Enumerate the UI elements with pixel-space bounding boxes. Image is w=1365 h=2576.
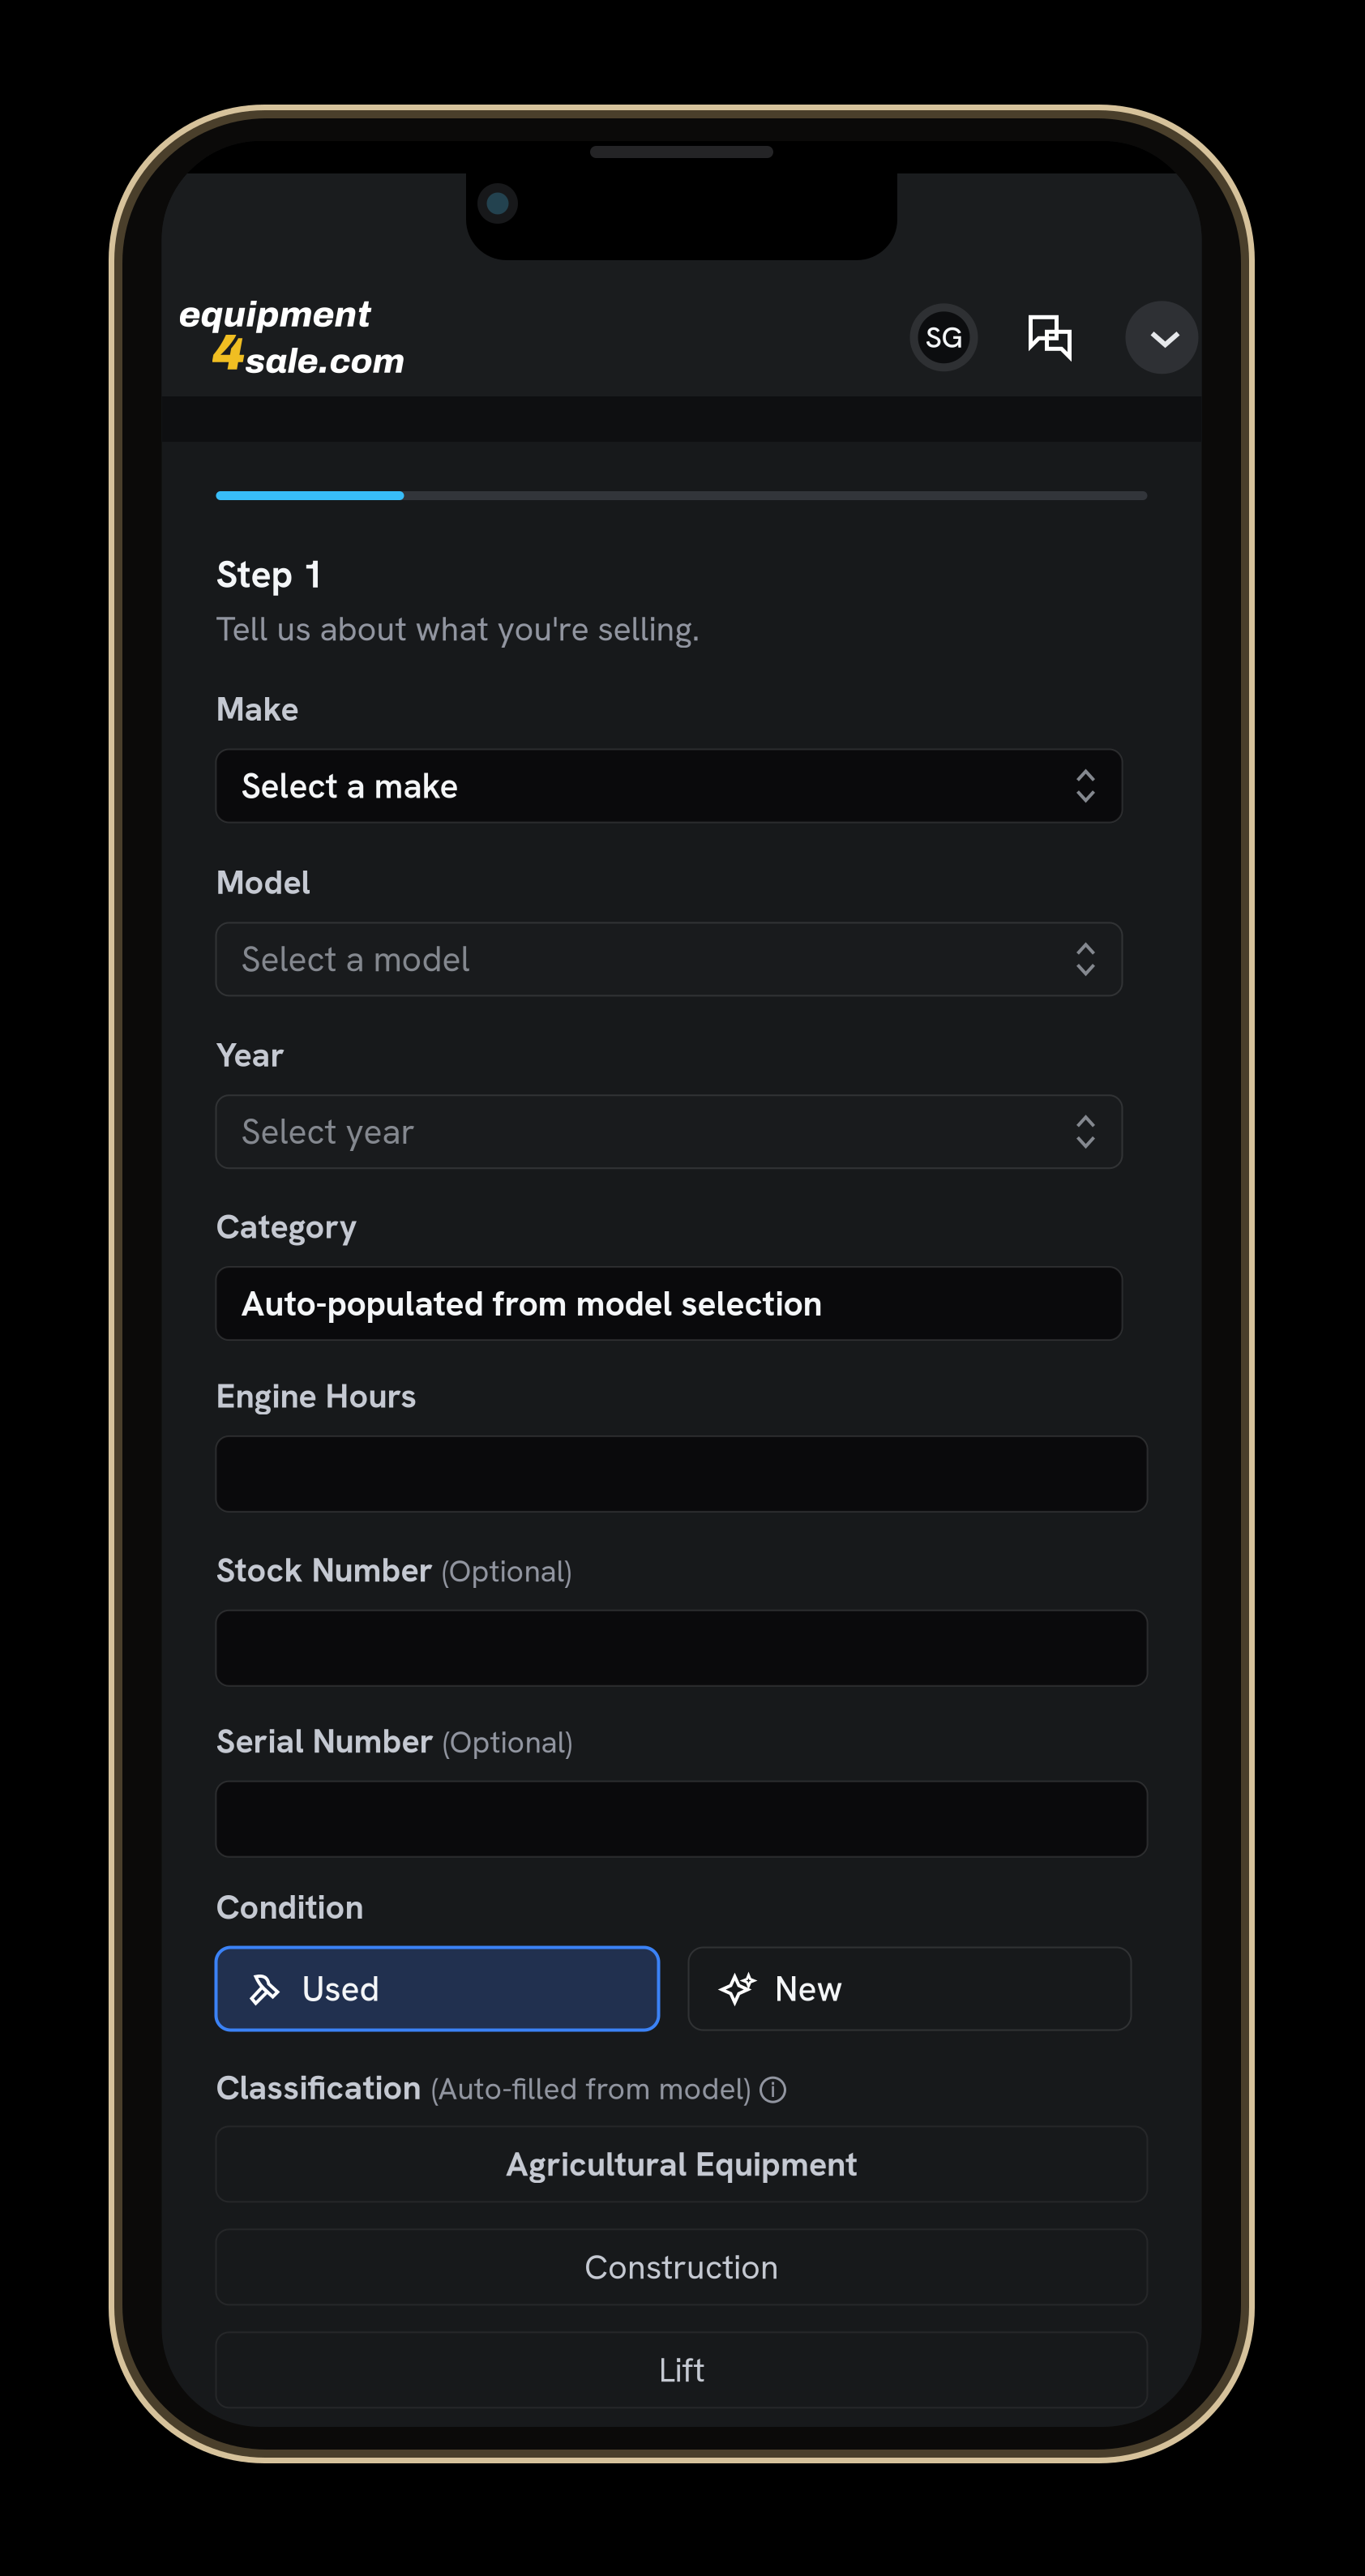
button[interactable]: Messages	[1019, 306, 1083, 369]
staticText: SG	[925, 318, 963, 356]
staticText: Stock Number	[216, 1548, 433, 1592]
button[interactable]: Open menu	[1125, 301, 1198, 374]
button[interactable]: Agricultural Equipment	[216, 2126, 1147, 2202]
staticText: Condition	[216, 1885, 364, 1929]
staticText: Year	[216, 1033, 285, 1077]
button[interactable]: Select year	[216, 1095, 1122, 1168]
staticText: Tell us about what you're selling.	[216, 607, 700, 651]
staticText: Select a make	[241, 763, 458, 808]
staticText: 4	[212, 326, 245, 380]
button[interactable]: Select a model	[216, 923, 1122, 996]
staticText: (Optional)	[443, 1722, 572, 1762]
button[interactable]: Select a make	[216, 749, 1122, 822]
staticText: Select year	[241, 1109, 415, 1154]
staticText: Serial Number	[216, 1719, 434, 1763]
staticText: Classification	[216, 2066, 421, 2109]
staticText: Model	[216, 860, 310, 904]
staticText: Make	[216, 687, 299, 731]
staticText: Category	[216, 1205, 357, 1248]
staticText: equipment	[179, 295, 371, 334]
button[interactable]: Construction	[216, 2229, 1147, 2305]
staticText: sale.com	[245, 342, 405, 380]
button[interactable]: Account	[910, 303, 978, 371]
staticText: Construction	[584, 2245, 779, 2289]
staticText: Used	[302, 1966, 380, 2011]
staticText: New	[774, 1966, 843, 2011]
staticText: i	[770, 2076, 775, 2104]
staticText: Lift	[659, 2348, 705, 2392]
button[interactable]: New	[689, 1947, 1131, 2030]
staticText: Step 1	[216, 550, 324, 599]
button[interactable]: Used	[216, 1947, 659, 2030]
staticText: Agricultural Equipment	[506, 2142, 858, 2186]
staticText: (Optional)	[442, 1551, 571, 1591]
button[interactable]: Lift	[216, 2332, 1147, 2408]
staticText: (Auto-filled from model)	[432, 2069, 750, 2108]
staticText: Engine Hours	[216, 1374, 417, 1418]
staticText: Auto-populated from model selection	[241, 1281, 822, 1326]
staticText: Select a model	[241, 937, 470, 982]
